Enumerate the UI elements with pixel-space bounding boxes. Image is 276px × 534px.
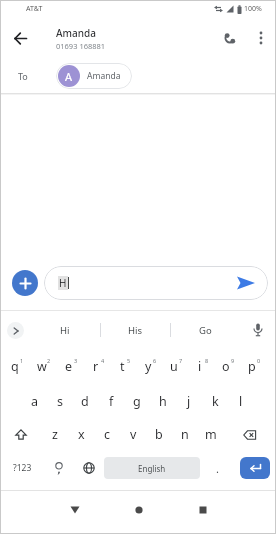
staticText: Hi [60,324,70,337]
staticText: 1 [20,357,24,364]
staticText: o [222,358,230,375]
staticText: 7 [179,357,183,364]
staticText: AT&T [26,4,43,14]
button[interactable]: w [28,349,55,384]
button[interactable]: m [198,418,224,451]
staticText: v [130,426,137,443]
staticText: q [11,358,19,375]
button[interactable]: o [213,349,239,384]
button[interactable]: His [101,317,170,343]
button[interactable]: s [47,384,72,418]
staticText: . [216,461,219,476]
staticText: 6 [153,357,157,364]
button[interactable] [0,418,42,451]
button[interactable] [0,317,30,343]
staticText: 5 [127,357,131,364]
staticText: l [239,393,243,410]
staticText: g [133,393,141,410]
staticText: 2 [47,357,51,364]
button[interactable]: p [239,349,265,384]
staticText: k [212,393,219,410]
button[interactable] [234,451,276,485]
staticText: A [65,69,73,84]
staticText: m [205,426,217,443]
staticText: 01693 168881 [56,41,106,51]
staticText: z [52,426,58,443]
staticText: h [159,393,167,410]
staticText: a [31,393,39,410]
staticText: 0 [257,357,261,364]
staticText: x [78,426,85,443]
staticText: 9 [231,357,235,364]
staticText: Go [199,324,212,337]
button[interactable]: n [172,418,198,451]
staticText: 100% [244,4,262,14]
staticText: d [81,393,89,410]
button[interactable]: . [200,451,234,485]
button[interactable]: x [68,418,94,451]
staticText: i [198,358,202,375]
button[interactable]: f [98,384,124,418]
button[interactable]: l [228,384,254,418]
button[interactable]: Go [171,317,240,343]
button[interactable]: r [82,349,109,384]
staticText: t [120,358,125,375]
staticText: His [128,324,143,337]
button[interactable]: j [176,384,202,418]
staticText: 8 [205,357,209,364]
button[interactable]: d [72,384,98,418]
staticText: u [170,358,178,375]
button[interactable]: q [1,349,28,384]
button[interactable]: k [202,384,228,418]
button[interactable] [44,451,74,485]
staticText: ?123 [13,462,32,474]
staticText: English [138,463,166,474]
button[interactable]: h [150,384,176,418]
button[interactable]: t [109,349,135,384]
staticText: b [155,426,163,443]
button[interactable]: v [120,418,146,451]
staticText: f [109,393,114,410]
staticText: r [93,358,99,375]
staticText: e [65,358,73,375]
button[interactable] [184,491,222,529]
staticText: Amanda [56,26,96,40]
button[interactable] [56,491,94,529]
button[interactable]: e [55,349,82,384]
button[interactable]: A [56,63,132,89]
button[interactable]: b [146,418,172,451]
button[interactable] [212,18,248,58]
staticText: p [248,358,256,375]
button[interactable] [74,451,104,485]
staticText: c [104,426,111,443]
button[interactable] [224,418,276,451]
button[interactable]: Hi [30,317,100,343]
button[interactable] [120,491,158,529]
staticText: Amanda [87,70,121,82]
button[interactable] [240,317,276,343]
button[interactable]: y [135,349,161,384]
button[interactable]: ?123 [0,451,44,485]
staticText: s [57,393,63,410]
button[interactable]: g [124,384,150,418]
button[interactable]: English [104,457,200,479]
staticText: n [181,426,189,443]
button[interactable]: c [94,418,120,451]
button[interactable] [248,18,274,58]
button[interactable]: i [187,349,213,384]
button[interactable]: u [161,349,187,384]
button[interactable]: H [44,266,268,300]
staticText: To [18,70,28,82]
staticText: w [37,358,47,375]
staticText: H [59,276,67,290]
staticText: 4 [101,357,105,364]
button[interactable]: a [22,384,47,418]
staticText: 3 [74,357,78,364]
button[interactable] [236,275,256,291]
button[interactable]: z [42,418,68,451]
staticText: j [187,393,191,410]
button[interactable] [12,270,38,296]
button[interactable] [0,18,40,58]
staticText: y [145,358,152,375]
